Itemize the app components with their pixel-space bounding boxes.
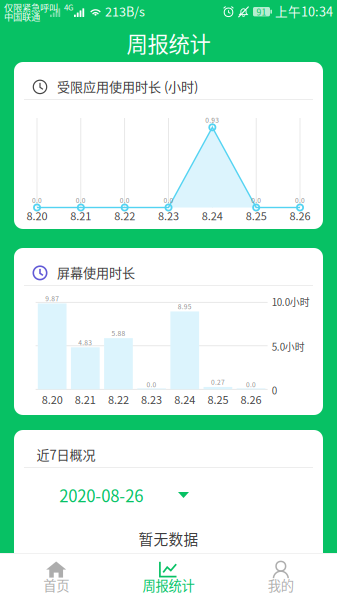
staticText: 首页 [43, 575, 69, 595]
button[interactable]: 周报统计 [112, 553, 225, 600]
staticText: 5.0小时 [272, 339, 305, 354]
staticText: 8.24 [174, 391, 195, 407]
staticText: 8.26 [289, 208, 310, 223]
staticText: 屏幕使用时长 [57, 262, 135, 281]
staticText: 0.0 [120, 195, 130, 205]
staticText: 8.95 [178, 302, 192, 311]
button[interactable]: 首页 [0, 553, 112, 600]
staticText: 受限应用使用时长 (小时) [57, 76, 198, 95]
staticText: 8.24 [202, 208, 223, 223]
staticText: 上午10:34 [275, 2, 333, 20]
staticText: 0.0 [163, 195, 173, 205]
staticText: 我的 [268, 575, 294, 595]
staticText: 0.0 [32, 195, 42, 205]
staticText: 8.23 [158, 208, 179, 223]
staticText: 周报统计 [142, 575, 194, 595]
staticText: 5.88 [111, 328, 125, 338]
staticText: 仅限紧急呼叫 [4, 1, 58, 14]
staticText: 0.0 [76, 195, 86, 205]
staticText: 10.0小时 [272, 295, 310, 309]
staticText: 2020-08-26 [59, 483, 143, 507]
staticText: 0.93 [205, 115, 219, 125]
staticText: 暂无数据 [138, 528, 198, 549]
staticText: 周报统计 [126, 28, 210, 58]
staticText: 8.21 [70, 208, 91, 223]
staticText: 0.0 [246, 379, 256, 389]
staticText: 8.25 [207, 391, 228, 407]
staticText: 91 [256, 5, 266, 18]
staticText: 8.21 [75, 391, 96, 407]
staticText: 0.0 [147, 379, 157, 389]
staticText: 0 [272, 383, 277, 397]
staticText: 4.83 [78, 337, 92, 347]
button[interactable]: 我的 [225, 553, 337, 600]
staticText: 0.27 [211, 377, 225, 387]
staticText: 8.26 [240, 391, 261, 407]
staticText: 0.0 [295, 195, 305, 205]
button[interactable]: 2020-08-26 [14, 469, 323, 521]
staticText: 213B/s [105, 2, 145, 20]
staticText: 8.22 [114, 208, 135, 223]
staticText: 4G [64, 1, 74, 13]
staticText: 9.87 [45, 294, 59, 303]
staticText: 8.23 [141, 391, 162, 407]
staticText: 8.22 [108, 391, 129, 407]
staticText: 8.25 [246, 208, 267, 223]
staticText: 8.20 [26, 208, 47, 223]
staticText: 中国联通 [4, 10, 40, 23]
staticText: 近7日概况 [36, 444, 95, 463]
staticText: 0.0 [251, 195, 261, 205]
staticText: 8.20 [42, 391, 63, 407]
